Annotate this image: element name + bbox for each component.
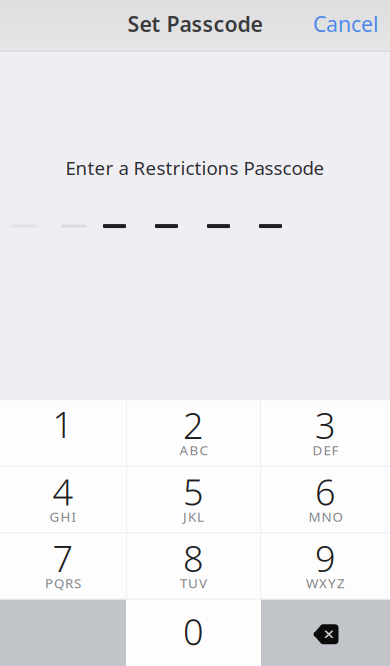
- button[interactable]: 9: [261, 533, 390, 599]
- button[interactable]: Delete: [261, 600, 390, 666]
- staticText: PQRS: [45, 574, 81, 592]
- button[interactable]: 3: [261, 400, 390, 466]
- staticText: 7: [52, 534, 73, 582]
- staticText: ABC: [179, 441, 207, 459]
- staticText: Cancel: [313, 10, 379, 38]
- staticText: GHI: [49, 508, 76, 525]
- button[interactable]: Cancel: [302, 0, 390, 50]
- button[interactable]: 4: [0, 467, 126, 532]
- staticText: JKL: [183, 508, 204, 525]
- staticText: WXYZ: [306, 574, 345, 592]
- button[interactable]: 7: [0, 533, 126, 599]
- staticText: 3: [315, 401, 336, 449]
- staticText: MNO: [308, 508, 342, 525]
- staticText: 8: [183, 534, 204, 582]
- button[interactable]: 2: [127, 400, 260, 466]
- staticText: Set Passcode: [127, 10, 262, 38]
- staticText: 2: [183, 401, 204, 449]
- button[interactable]: 6: [261, 467, 390, 532]
- staticText: 0: [183, 607, 204, 655]
- staticText: 5: [183, 468, 204, 515]
- button[interactable]: 8: [127, 533, 260, 599]
- button[interactable]: 5: [127, 467, 260, 532]
- staticText: 6: [315, 468, 336, 515]
- staticText: 9: [315, 534, 336, 582]
- button[interactable]: 1: [0, 400, 126, 466]
- staticText: 1: [52, 400, 73, 448]
- staticText: DEF: [312, 441, 338, 459]
- staticText: TUV: [180, 574, 207, 592]
- staticText: Enter a Restrictions Passcode: [65, 155, 324, 180]
- staticText: 4: [52, 468, 73, 515]
- button[interactable]: 0: [126, 600, 261, 666]
